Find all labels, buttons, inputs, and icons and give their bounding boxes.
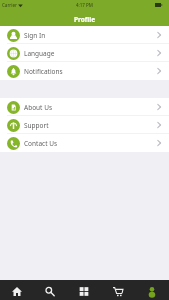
staticText: Carrier [2, 2, 17, 8]
button[interactable]: Contact Us [0, 134, 169, 152]
button[interactable]: Categories [67, 280, 101, 300]
button[interactable]: Home [0, 280, 33, 300]
button[interactable]: Profile [135, 280, 169, 300]
staticText: 4:17 PM [76, 2, 93, 8]
button[interactable]: Cart [101, 280, 135, 300]
button[interactable]: About Us [0, 98, 169, 116]
button[interactable]: Support [0, 116, 169, 134]
staticText: Support [24, 121, 49, 130]
staticText: Contact Us [24, 139, 58, 148]
button[interactable]: Language [0, 44, 169, 62]
staticText: Notifications [24, 67, 63, 76]
button[interactable]: Search [33, 280, 67, 300]
button[interactable]: Notifications [0, 62, 169, 80]
staticText: Profile [74, 15, 96, 24]
staticText: Language [24, 49, 55, 58]
staticText: Sign In [24, 31, 46, 40]
staticText: About Us [24, 103, 53, 112]
button[interactable]: Sign In [0, 26, 169, 44]
